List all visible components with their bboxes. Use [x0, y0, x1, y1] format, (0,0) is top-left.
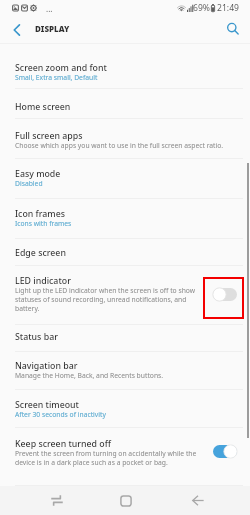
- staticText: After 30 seconds of inactivity: [15, 410, 106, 419]
- button[interactable]: Back: [0, 16, 33, 46]
- staticText: Icon frames: [15, 208, 65, 220]
- button[interactable]: Status bar: [0, 325, 250, 352]
- staticText: Screen zoom and font: [15, 62, 107, 74]
- button[interactable]: Home: [103, 486, 148, 515]
- staticText: LED indicator: [15, 275, 71, 287]
- staticText: Screen timeout: [15, 399, 79, 411]
- staticText: Disabled: [15, 179, 43, 188]
- staticText: Easy mode: [15, 168, 61, 180]
- staticText: 21:49: [217, 2, 239, 14]
- button[interactable]: Navigation bar: [0, 352, 250, 390]
- staticText: Light up the LED indicator when the scre…: [15, 286, 200, 313]
- button[interactable]: Toggle off: [213, 288, 237, 301]
- button[interactable]: Edge screen: [0, 239, 250, 266]
- button[interactable]: Toggle on: [213, 445, 237, 458]
- button[interactable]: Easy mode: [0, 159, 250, 199]
- staticText: Navigation bar: [15, 360, 78, 372]
- staticText: Choose which apps you want to use in the…: [15, 141, 224, 150]
- staticText: Icons with frames: [15, 219, 72, 228]
- staticText: Full screen apps: [15, 130, 83, 142]
- staticText: DISPLAY: [35, 23, 70, 34]
- staticText: Home screen: [15, 101, 71, 113]
- staticText: 69%: [193, 2, 210, 14]
- staticText: Keep screen turned off: [15, 438, 112, 450]
- staticText: Small, Extra small, Default: [15, 73, 98, 82]
- button[interactable]: Recents: [34, 486, 79, 515]
- staticText: ...: [46, 3, 53, 14]
- button[interactable]: Back: [175, 486, 220, 515]
- button[interactable]: Keep screen turned off: [0, 428, 250, 486]
- staticText: Prevent the screen from turning on accid…: [15, 449, 205, 467]
- button[interactable]: Search: [218, 16, 250, 46]
- staticText: Status bar: [15, 331, 58, 343]
- staticText: Edge screen: [15, 247, 66, 259]
- staticText: Manage the Home, Back, and Recents butto…: [15, 371, 164, 380]
- button[interactable]: Screen zoom and font: [0, 46, 250, 89]
- button[interactable]: Screen timeout: [0, 390, 250, 428]
- button[interactable]: Full screen apps: [0, 119, 250, 159]
- button[interactable]: Icon frames: [0, 199, 250, 239]
- button[interactable]: Home screen: [0, 89, 250, 119]
- button[interactable]: LED indicator: [0, 266, 250, 325]
